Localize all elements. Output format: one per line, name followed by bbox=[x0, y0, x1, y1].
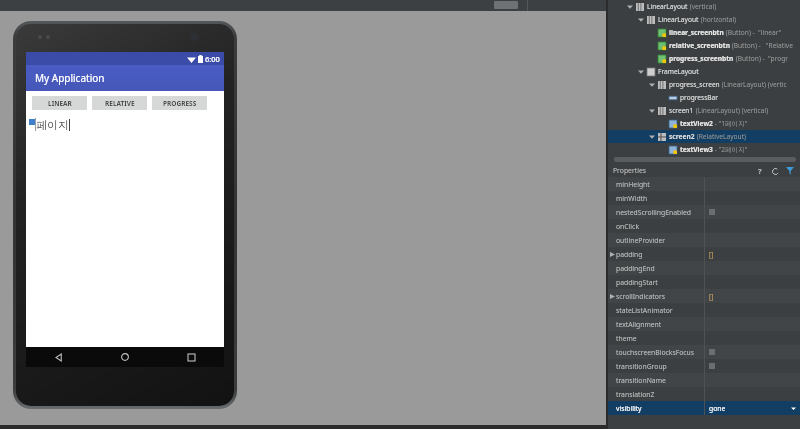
staticText: textAlignment bbox=[616, 320, 662, 329]
staticText: (RelativeLayout) bbox=[695, 132, 747, 141]
staticText: (Button) - "progr bbox=[734, 54, 789, 63]
staticText: relative_screenbtn bbox=[669, 41, 730, 50]
staticText: paddingStart bbox=[616, 278, 658, 287]
staticText: linear_screenbtn bbox=[669, 28, 724, 37]
button[interactable]: transitionName bbox=[608, 373, 800, 387]
button[interactable]: Home bbox=[115, 347, 135, 367]
staticText: touchscreenBlocksFocus bbox=[616, 348, 695, 357]
button[interactable]: Help bbox=[755, 166, 765, 176]
button[interactable]: screen1 bbox=[608, 104, 800, 117]
staticText: transitionName bbox=[616, 376, 666, 385]
button[interactable]: padding bbox=[608, 247, 800, 261]
staticText: stateListAnimator bbox=[616, 306, 673, 315]
staticText: (LinearLayout) (vertical) bbox=[694, 106, 769, 115]
staticText: - "1페이지" bbox=[713, 119, 748, 128]
staticText: padding bbox=[616, 250, 643, 259]
button[interactable]: screen2 bbox=[608, 130, 800, 143]
button[interactable]: outlineProvider bbox=[608, 233, 800, 247]
button[interactable]: Filter bbox=[785, 166, 795, 176]
staticText: 페이지 bbox=[36, 118, 69, 132]
button[interactable]: progress_screenbtn bbox=[608, 52, 800, 65]
staticText: minHeight bbox=[616, 180, 650, 189]
button[interactable]: progressBar bbox=[608, 91, 800, 104]
staticText: (vertical) bbox=[688, 2, 717, 11]
button[interactable]: PROGRESS bbox=[152, 96, 207, 110]
staticText: progressBar bbox=[680, 93, 719, 102]
button[interactable]: stateListAnimator bbox=[608, 303, 800, 317]
button[interactable]: relative_screenbtn bbox=[608, 39, 800, 52]
staticText: onClick bbox=[616, 222, 640, 231]
staticText: (Button) - "linear" bbox=[724, 28, 782, 37]
staticText: progress_screenbtn bbox=[669, 54, 734, 63]
button[interactable]: LinearLayout bbox=[608, 0, 800, 13]
button[interactable]: touchscreenBlocksFocus bbox=[608, 345, 800, 359]
button[interactable]: progress_screen bbox=[608, 78, 800, 91]
staticText: theme bbox=[616, 334, 637, 343]
staticText: [] bbox=[709, 250, 714, 259]
button[interactable]: linear_screenbtn bbox=[608, 26, 800, 39]
staticText: nestedScrollingEnabled bbox=[616, 208, 691, 217]
staticText: textView3 bbox=[680, 145, 713, 154]
staticText: screen2 bbox=[669, 132, 695, 141]
button[interactable]: paddingEnd bbox=[608, 261, 800, 275]
button[interactable]: Back bbox=[49, 347, 69, 367]
button[interactable]: textView3 bbox=[608, 143, 800, 156]
button[interactable]: scrollIndicators bbox=[608, 289, 800, 303]
staticText: progress_screen bbox=[669, 80, 720, 89]
staticText: ? bbox=[758, 166, 762, 176]
staticText: [] bbox=[709, 292, 714, 301]
staticText: RELATIVE bbox=[105, 99, 135, 108]
staticText: LinearLayout bbox=[647, 2, 688, 11]
button[interactable]: FrameLayout bbox=[608, 65, 800, 78]
staticText: PROGRESS bbox=[163, 99, 197, 108]
button[interactable]: translationZ bbox=[608, 387, 800, 401]
staticText: gone bbox=[709, 404, 726, 413]
staticText: Properties bbox=[613, 166, 647, 175]
button[interactable]: minHeight bbox=[608, 177, 800, 191]
staticText: visibility bbox=[616, 404, 642, 413]
button[interactable]: minWidth bbox=[608, 191, 800, 205]
staticText: scrollIndicators bbox=[616, 292, 665, 301]
staticText: transitionGroup bbox=[616, 362, 667, 371]
button[interactable]: LinearLayout bbox=[608, 13, 800, 26]
button[interactable]: theme bbox=[608, 331, 800, 345]
button[interactable]: visibility bbox=[608, 401, 800, 415]
staticText: minWidth bbox=[616, 194, 648, 203]
button[interactable]: Restore defaults bbox=[770, 166, 780, 176]
button[interactable]: onClick bbox=[608, 219, 800, 233]
staticText: textView2 bbox=[680, 119, 713, 128]
staticText: LINEAR bbox=[48, 99, 72, 108]
button[interactable]: LINEAR bbox=[32, 96, 87, 110]
button[interactable]: textView2 bbox=[608, 117, 800, 130]
staticText: (horizontal) bbox=[699, 15, 737, 24]
button[interactable]: nestedScrollingEnabled bbox=[608, 205, 800, 219]
button[interactable]: textAlignment bbox=[608, 317, 800, 331]
staticText: LinearLayout bbox=[658, 15, 699, 24]
staticText: FrameLayout bbox=[658, 67, 699, 76]
staticText: (LinearLayout) (vertic bbox=[720, 80, 787, 89]
button[interactable]: RELATIVE bbox=[92, 96, 147, 110]
staticText: 6:00 bbox=[205, 54, 220, 64]
button[interactable]: paddingStart bbox=[608, 275, 800, 289]
staticText: paddingEnd bbox=[616, 264, 655, 273]
staticText: (Button) - "Relative bbox=[730, 41, 793, 50]
staticText: translationZ bbox=[616, 390, 655, 399]
staticText: screen1 bbox=[669, 106, 694, 115]
button[interactable]: Recents bbox=[181, 347, 201, 367]
button[interactable]: transitionGroup bbox=[608, 359, 800, 373]
staticText: outlineProvider bbox=[616, 236, 666, 245]
staticText: My Application bbox=[35, 71, 105, 85]
staticText: - "2페이지" bbox=[713, 145, 748, 154]
